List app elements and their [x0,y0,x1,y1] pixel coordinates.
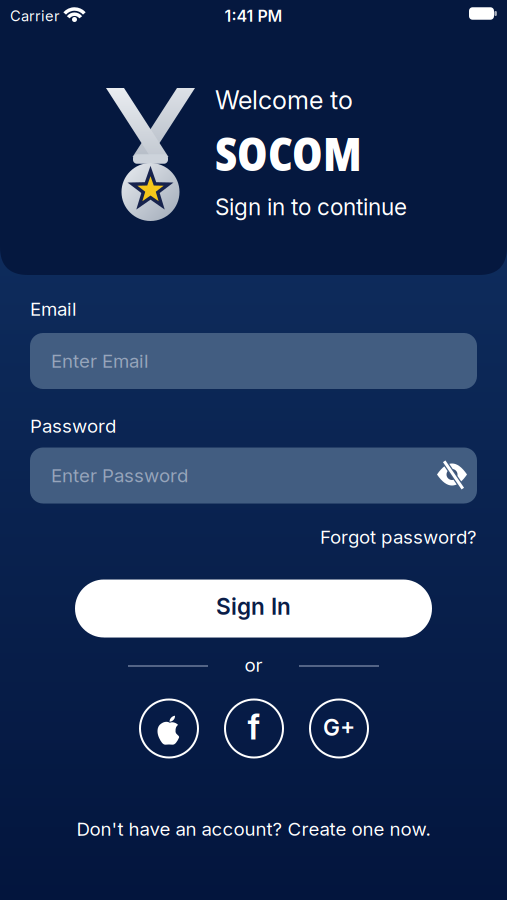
staticText: Welcome to [215,85,353,115]
staticText: Forgot password? [320,526,477,548]
staticText: f [247,707,260,747]
staticText: Enter Email [51,350,149,372]
staticText: Password [30,415,116,437]
staticText: Don't have an account? Create one now. [76,818,430,840]
staticText: Sign In [216,593,291,620]
staticText: Enter Password [51,464,188,486]
staticText: Carrier [10,7,60,25]
staticText: 1:41 PM [224,7,282,25]
staticText: SOCOM [215,123,362,184]
staticText: G+ [323,714,355,741]
staticText: or [244,654,262,676]
staticText: Sign in to continue [215,194,407,220]
staticText: Email [30,298,77,320]
